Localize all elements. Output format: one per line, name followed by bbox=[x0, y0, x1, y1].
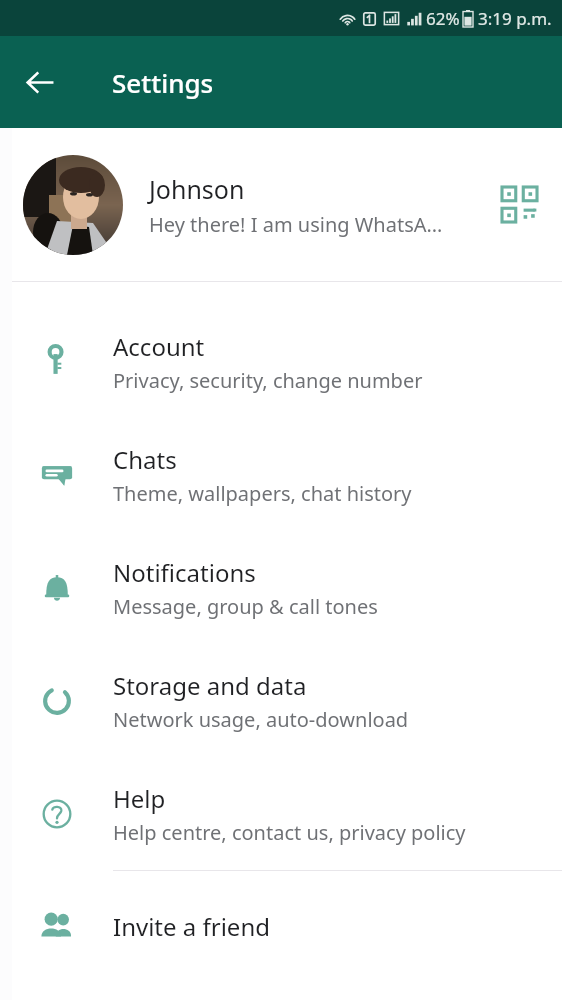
staticText: Privacy, security, change number bbox=[113, 367, 423, 394]
button[interactable]: Johnson bbox=[0, 128, 562, 281]
staticText: Message, group & call tones bbox=[113, 593, 378, 620]
button[interactable]: Notifications bbox=[0, 531, 562, 644]
button[interactable]: QR code bbox=[496, 181, 544, 229]
staticText: Help bbox=[113, 782, 166, 815]
staticText: Storage and data bbox=[113, 669, 307, 702]
staticText: Network usage, auto-download bbox=[113, 706, 409, 733]
button[interactable]: Account bbox=[0, 305, 562, 418]
staticText: Theme, wallpapers, chat history bbox=[113, 480, 412, 507]
button[interactable]: Chats bbox=[0, 418, 562, 531]
button[interactable]: Help bbox=[0, 757, 562, 870]
staticText: 3:19 p.m. bbox=[478, 7, 552, 30]
staticText: Settings bbox=[112, 65, 214, 100]
staticText: Help centre, contact us, privacy policy bbox=[113, 819, 466, 846]
staticText: Account bbox=[113, 330, 205, 363]
button[interactable]: Storage and data bbox=[0, 644, 562, 757]
staticText: Johnson bbox=[149, 172, 245, 206]
staticText: Invite a friend bbox=[113, 910, 270, 943]
staticText: Hey there! I am using WhatsA… bbox=[149, 211, 443, 238]
staticText: 62% bbox=[426, 7, 460, 30]
staticText: Notifications bbox=[113, 556, 256, 589]
staticText: Chats bbox=[113, 443, 177, 476]
button[interactable]: Back bbox=[10, 53, 68, 111]
button[interactable]: Invite a friend bbox=[0, 871, 562, 981]
